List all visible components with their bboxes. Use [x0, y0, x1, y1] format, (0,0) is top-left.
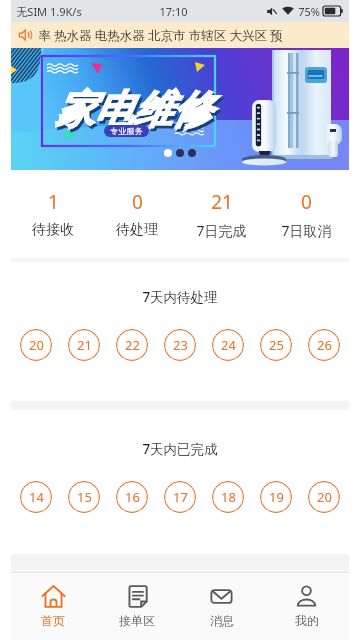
button[interactable]: 我的	[264, 573, 349, 640]
staticText: 家电维修	[55, 85, 211, 134]
staticText: 26	[317, 336, 332, 354]
staticText: 消息	[210, 613, 234, 628]
staticText: 19	[269, 488, 284, 506]
button[interactable]: 家电维修	[11, 48, 349, 170]
staticText: 21	[211, 189, 233, 215]
button[interactable]: 率 热水器 电热水器 北京市 市辖区 大兴区 预	[11, 22, 349, 48]
staticText: 14	[29, 488, 44, 506]
staticText: 待处理	[116, 221, 158, 239]
staticText: 7日完成	[196, 221, 247, 240]
button[interactable]: 19	[260, 481, 292, 513]
button[interactable]: 17	[164, 481, 196, 513]
staticText: 我的	[295, 613, 319, 628]
staticText: 17:10	[159, 4, 188, 19]
staticText: 7日取消	[281, 221, 332, 240]
button[interactable]: 25	[260, 329, 292, 361]
staticText: 20	[29, 336, 44, 354]
staticText: 无SIM 1.9K/s	[16, 4, 82, 19]
staticText: 24	[221, 336, 236, 354]
staticText: 1	[48, 189, 59, 215]
button[interactable]: 22	[116, 329, 148, 361]
staticText: 20	[317, 488, 332, 506]
staticText: 25	[269, 336, 284, 354]
button[interactable]: 首页	[11, 573, 95, 640]
staticText: 专业服务	[110, 126, 143, 136]
staticText: 待接收	[32, 221, 74, 239]
button[interactable]: 20	[20, 329, 52, 361]
staticText: 22	[125, 336, 140, 354]
button[interactable]: 24	[212, 329, 244, 361]
staticText: 接单区	[119, 613, 155, 628]
staticText: 17	[173, 488, 188, 506]
button[interactable]: 18	[212, 481, 244, 513]
button[interactable]: 23	[164, 329, 196, 361]
button[interactable]: 15	[68, 481, 100, 513]
button[interactable]: 1	[11, 170, 95, 258]
button[interactable]: 0	[264, 170, 349, 258]
staticText: 18	[221, 488, 236, 506]
staticText: 0	[301, 189, 312, 215]
button[interactable]: 21	[179, 170, 264, 258]
staticText: 16	[125, 488, 140, 506]
button[interactable]: 14	[20, 481, 52, 513]
button[interactable]: 接单区	[95, 573, 179, 640]
staticText: 家电维修	[57, 88, 213, 137]
button[interactable]: 26	[308, 329, 340, 361]
button[interactable]: 20	[308, 481, 340, 513]
button[interactable]: 消息	[179, 573, 264, 640]
button[interactable]: 16	[116, 481, 148, 513]
staticText: 15	[77, 488, 92, 506]
button[interactable]: 21	[68, 329, 100, 361]
staticText: 0	[132, 189, 143, 215]
staticText: 率 热水器 电热水器 北京市 市辖区 大兴区 预	[38, 27, 283, 44]
staticText: 7天内已完成	[142, 440, 218, 458]
staticText: 21	[77, 336, 92, 354]
staticText: 23	[173, 336, 188, 354]
staticText: 7天内待处理	[142, 288, 218, 306]
button[interactable]: 0	[95, 170, 179, 258]
staticText: 首页	[41, 613, 65, 628]
staticText: 75%	[298, 4, 320, 19]
